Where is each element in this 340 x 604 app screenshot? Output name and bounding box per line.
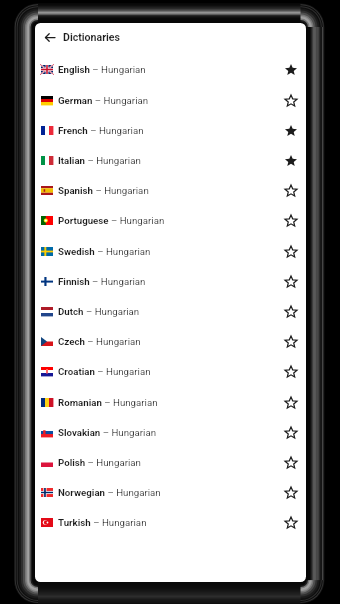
button[interactable]: Add to favourites: [278, 268, 304, 294]
staticText: Romanian – Hungarian: [58, 397, 158, 408]
button[interactable]: Remove from favourites: [278, 56, 304, 82]
button[interactable]: Add to favourites: [278, 449, 304, 475]
staticText: German – Hungarian: [58, 95, 149, 106]
staticText: Spanish – Hungarian: [58, 185, 149, 196]
staticText: Dutch – Hungarian: [58, 306, 140, 317]
button[interactable]: Remove from favourites: [278, 147, 304, 173]
button[interactable]: Add to favourites: [278, 177, 304, 203]
staticText: Norwegian – Hungarian: [58, 487, 161, 498]
button[interactable]: Add to favourites: [278, 419, 304, 445]
button[interactable]: Add to favourites: [278, 87, 304, 113]
button[interactable]: Polish – Hungarian: [35, 447, 306, 477]
button[interactable]: Add to favourites: [278, 238, 304, 264]
staticText: Italian – Hungarian: [58, 155, 141, 166]
button[interactable]: Czech – Hungarian: [35, 326, 306, 356]
button[interactable]: Italian – Hungarian: [35, 145, 306, 175]
button[interactable]: German – Hungarian: [35, 85, 306, 115]
staticText: Dictionaries: [63, 31, 121, 43]
button[interactable]: Add to favourites: [278, 358, 304, 384]
button[interactable]: Back: [37, 25, 62, 50]
button[interactable]: Add to favourites: [278, 389, 304, 415]
button[interactable]: Add to favourites: [278, 509, 304, 535]
button[interactable]: Add to favourites: [278, 328, 304, 354]
staticText: Swedish – Hungarian: [58, 246, 151, 257]
button[interactable]: Portuguese – Hungarian: [35, 205, 306, 235]
staticText: Polish – Hungarian: [58, 457, 141, 468]
button[interactable]: Finnish – Hungarian: [35, 266, 306, 296]
button[interactable]: English – Hungarian: [35, 54, 306, 84]
staticText: English – Hungarian: [58, 64, 146, 75]
staticText: Turkish – Hungarian: [58, 517, 147, 528]
staticText: Czech – Hungarian: [58, 336, 141, 347]
staticText: Croatian – Hungarian: [58, 366, 151, 377]
button[interactable]: Add to favourites: [278, 479, 304, 505]
button[interactable]: Romanian – Hungarian: [35, 387, 306, 417]
button[interactable]: Add to favourites: [278, 207, 304, 233]
button[interactable]: Add to favourites: [278, 298, 304, 324]
button[interactable]: Turkish – Hungarian: [35, 507, 306, 537]
button[interactable]: Remove from favourites: [278, 117, 304, 143]
staticText: Finnish – Hungarian: [58, 276, 146, 287]
staticText: Portuguese – Hungarian: [58, 215, 165, 226]
button[interactable]: French – Hungarian: [35, 115, 306, 145]
button[interactable]: Spanish – Hungarian: [35, 175, 306, 205]
staticText: Slovakian – Hungarian: [58, 427, 157, 438]
button[interactable]: Dutch – Hungarian: [35, 296, 306, 326]
button[interactable]: Swedish – Hungarian: [35, 236, 306, 266]
staticText: French – Hungarian: [58, 125, 144, 136]
button[interactable]: Norwegian – Hungarian: [35, 477, 306, 507]
button[interactable]: Slovakian – Hungarian: [35, 417, 306, 447]
button[interactable]: Croatian – Hungarian: [35, 356, 306, 386]
